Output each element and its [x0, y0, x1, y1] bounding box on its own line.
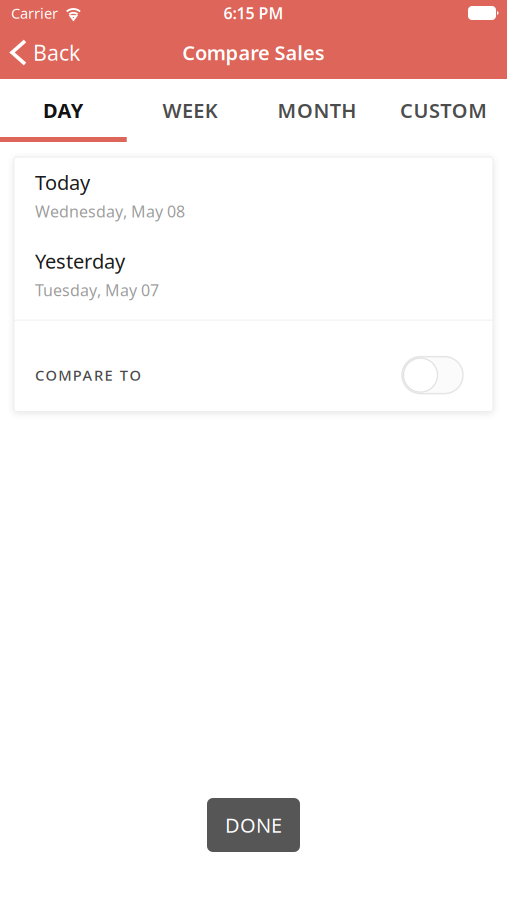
- staticText: COMPARE TO: [35, 365, 140, 385]
- staticText: Back: [33, 38, 80, 67]
- staticText: Carrier: [11, 3, 58, 23]
- staticText: MONTH: [277, 97, 356, 124]
- staticText: 6:15 PM: [223, 2, 283, 24]
- button[interactable]: MONTH: [253, 79, 380, 142]
- staticText: Wednesday, May 08: [35, 201, 185, 222]
- staticText: Today: [35, 169, 90, 196]
- staticText: Yesterday: [35, 248, 125, 274]
- staticText: WEEK: [162, 97, 218, 124]
- button[interactable]: DAY: [0, 79, 127, 142]
- button[interactable]: DONE: [207, 798, 300, 852]
- button[interactable]: CUSTOM: [380, 79, 507, 142]
- staticText: DAY: [43, 97, 84, 124]
- button[interactable]: WEEK: [127, 79, 254, 142]
- staticText: Tuesday, May 07: [35, 279, 159, 301]
- button[interactable]: COMPARE TO: [14, 321, 493, 412]
- staticText: DONE: [225, 812, 282, 838]
- staticText: CUSTOM: [400, 97, 487, 124]
- button[interactable]: Yesterday: [14, 248, 493, 301]
- button[interactable]: Today: [14, 169, 493, 222]
- button[interactable]: Back: [0, 29, 90, 76]
- staticText: Compare Sales: [182, 39, 325, 66]
